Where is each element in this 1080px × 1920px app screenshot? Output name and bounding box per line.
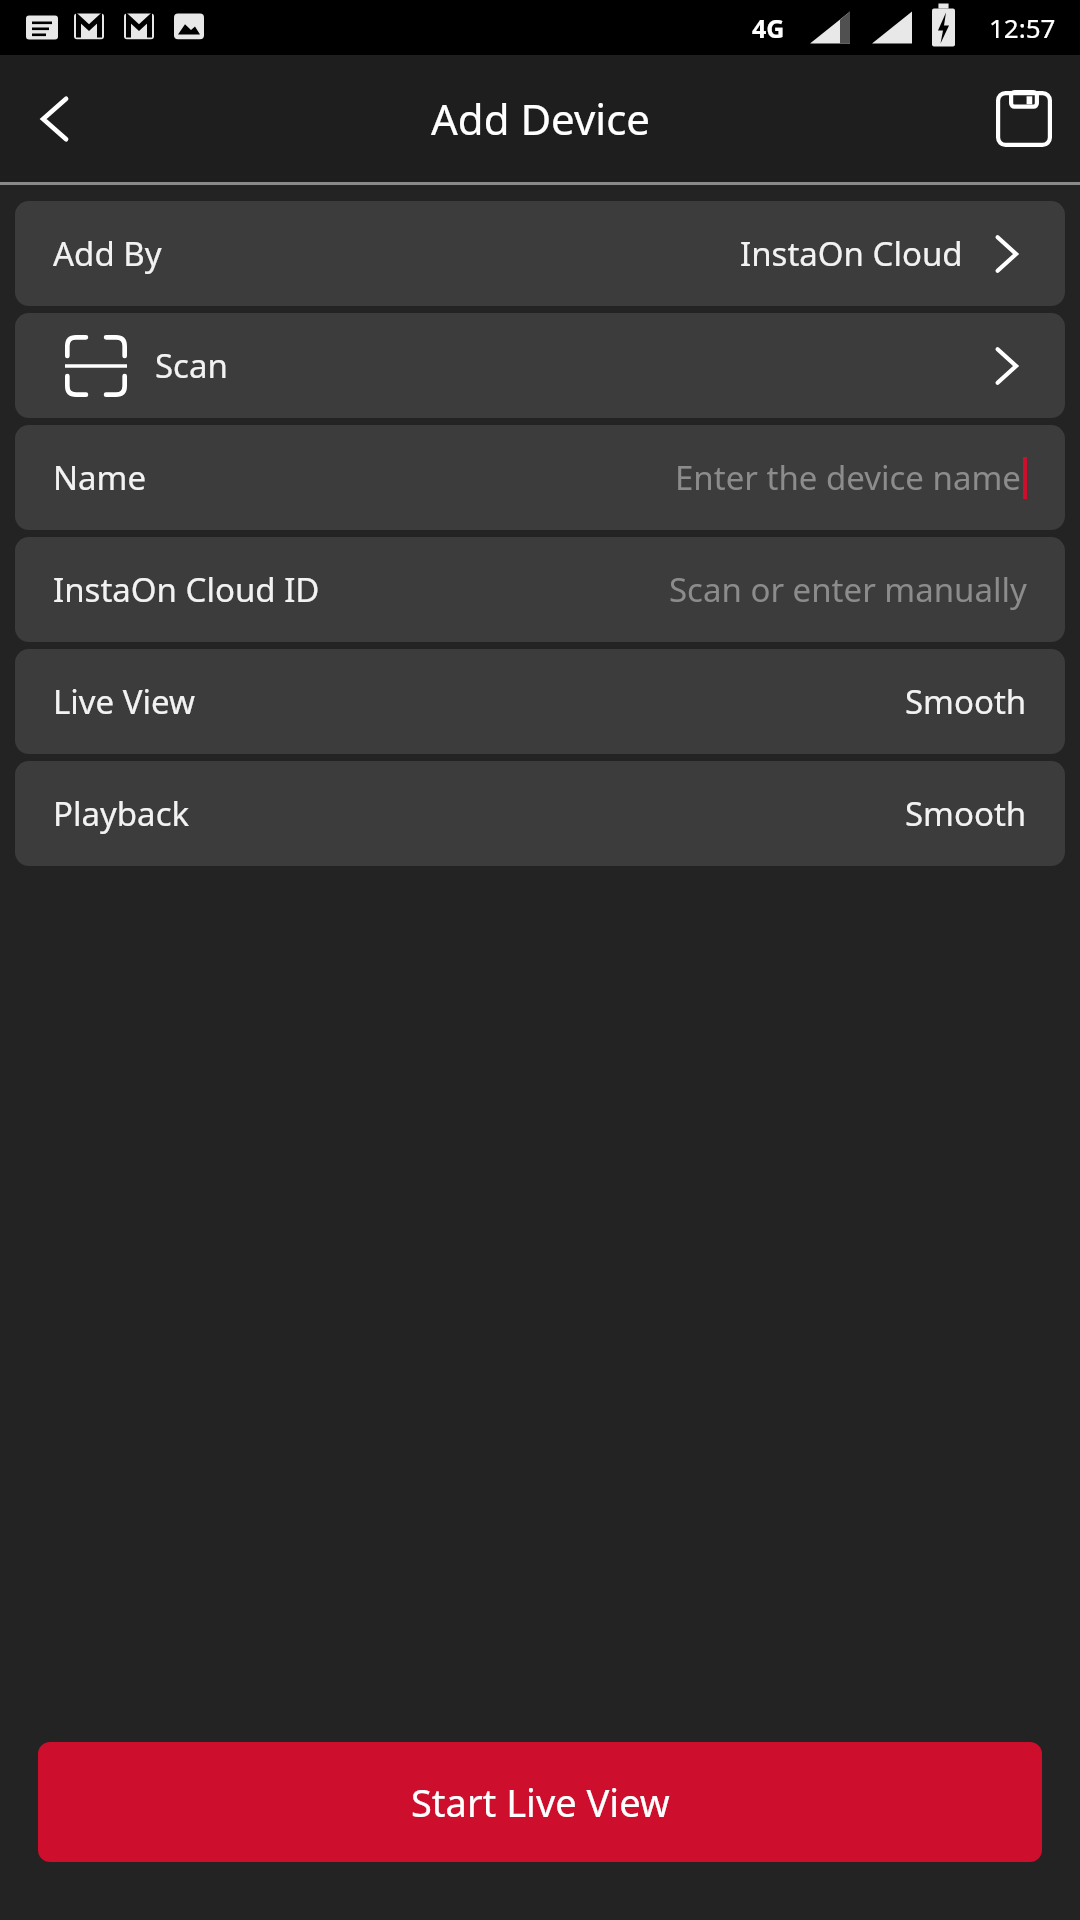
button[interactable]: Add By	[15, 201, 1065, 306]
staticText: Scan or enter manually	[669, 567, 1027, 612]
button[interactable]: Name	[15, 425, 1065, 530]
staticText: 12:57	[989, 10, 1056, 45]
staticText: Live View	[53, 679, 195, 724]
button[interactable]: InstaOn Cloud ID	[15, 537, 1065, 642]
staticText: Start Live View	[411, 1776, 670, 1828]
staticText: Playback	[53, 791, 190, 836]
button[interactable]: Start Live View	[38, 1742, 1042, 1862]
button[interactable]: Save	[968, 63, 1080, 175]
staticText: Name	[53, 455, 147, 500]
staticText: Smooth	[905, 679, 1027, 724]
staticText: Smooth	[905, 791, 1027, 836]
staticText: InstaOn Cloud	[740, 231, 963, 276]
button[interactable]: Back	[0, 63, 112, 175]
staticText: InstaOn Cloud ID	[53, 567, 320, 612]
staticText: Add By	[53, 231, 162, 276]
staticText: Enter the device name	[675, 455, 1021, 500]
staticText: Scan	[155, 343, 228, 388]
button[interactable]: Scan	[15, 313, 1065, 418]
button[interactable]: Playback	[15, 761, 1065, 866]
staticText: Add Device	[431, 90, 650, 147]
button[interactable]: Live View	[15, 649, 1065, 754]
staticText: 4G	[752, 11, 785, 45]
